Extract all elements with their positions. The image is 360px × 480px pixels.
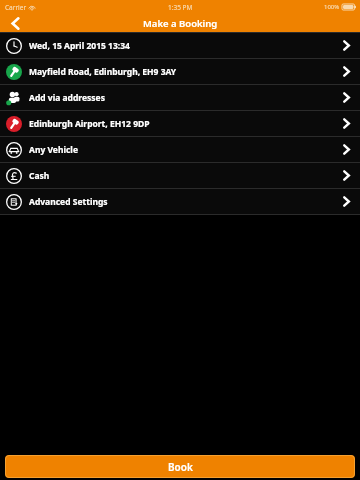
button[interactable]: Book xyxy=(5,455,355,478)
button[interactable]: Add via addresses xyxy=(0,85,360,110)
button[interactable]: Any Vehicle xyxy=(0,137,360,162)
button[interactable]: Advanced Settings xyxy=(0,189,360,214)
staticText: 100% xyxy=(324,3,340,11)
staticText: Advanced Settings xyxy=(29,196,108,208)
button[interactable]: Mayfield Road, Edinburgh, EH9 3AY xyxy=(0,59,360,84)
staticText: Mayfield Road, Edinburgh, EH9 3AY xyxy=(29,66,177,78)
button[interactable]: Back xyxy=(0,14,30,32)
staticText: Add via addresses xyxy=(29,92,105,104)
button[interactable]: Edinburgh Airport, EH12 9DP xyxy=(0,111,360,136)
staticText: Edinburgh Airport, EH12 9DP xyxy=(29,118,150,130)
staticText: Wed, 15 April 2015 13:34 xyxy=(29,40,130,52)
staticText: Cash xyxy=(29,170,50,182)
staticText: Carrier xyxy=(5,3,27,12)
staticText: Book xyxy=(168,460,193,474)
button[interactable]: Wed, 15 April 2015 13:34 xyxy=(0,33,360,58)
staticText: 1:35 PM xyxy=(168,3,193,12)
button[interactable]: Cash xyxy=(0,163,360,188)
staticText: Make a Booking xyxy=(143,17,218,30)
staticText: Any Vehicle xyxy=(29,144,78,156)
